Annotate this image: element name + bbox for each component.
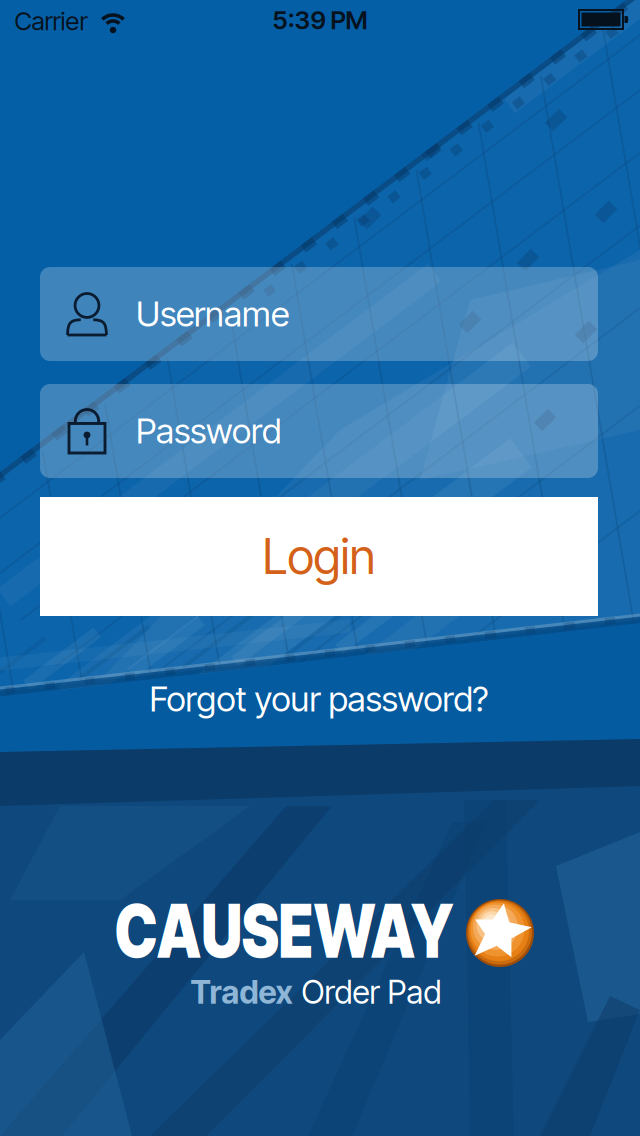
staticText: Login xyxy=(262,528,375,585)
button[interactable]: Login xyxy=(40,497,598,616)
staticText: 5:39 PM xyxy=(272,5,367,35)
staticText: CAUSEWAY xyxy=(69,888,498,974)
staticText: Username xyxy=(136,294,289,334)
staticText: Carrier xyxy=(14,6,87,36)
button[interactable]: Password xyxy=(40,384,598,478)
button[interactable]: Username xyxy=(40,267,598,361)
button[interactable]: Forgot your password? xyxy=(149,679,488,719)
staticText: Tradex xyxy=(190,973,292,1011)
staticText: Order Pad xyxy=(301,973,441,1011)
staticText: Password xyxy=(136,411,281,451)
staticText: Forgot your password? xyxy=(149,679,488,719)
